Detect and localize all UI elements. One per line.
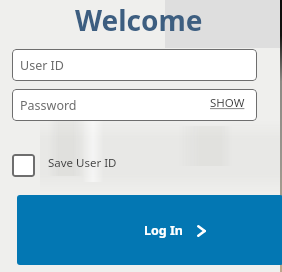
button[interactable]: User ID xyxy=(12,49,257,81)
staticText: User ID xyxy=(20,57,64,74)
button[interactable]: Password xyxy=(12,89,257,121)
other: Log In xyxy=(197,225,206,237)
staticText: Save User ID xyxy=(48,155,117,171)
staticText: Log In xyxy=(144,222,183,239)
staticText: SHOW xyxy=(210,95,245,111)
staticText: Password xyxy=(20,97,77,114)
staticText: Welcome xyxy=(75,1,203,39)
button[interactable]: Log In xyxy=(17,195,282,265)
button[interactable]: SHOW xyxy=(210,95,245,111)
button[interactable]: Save User ID xyxy=(12,154,117,177)
